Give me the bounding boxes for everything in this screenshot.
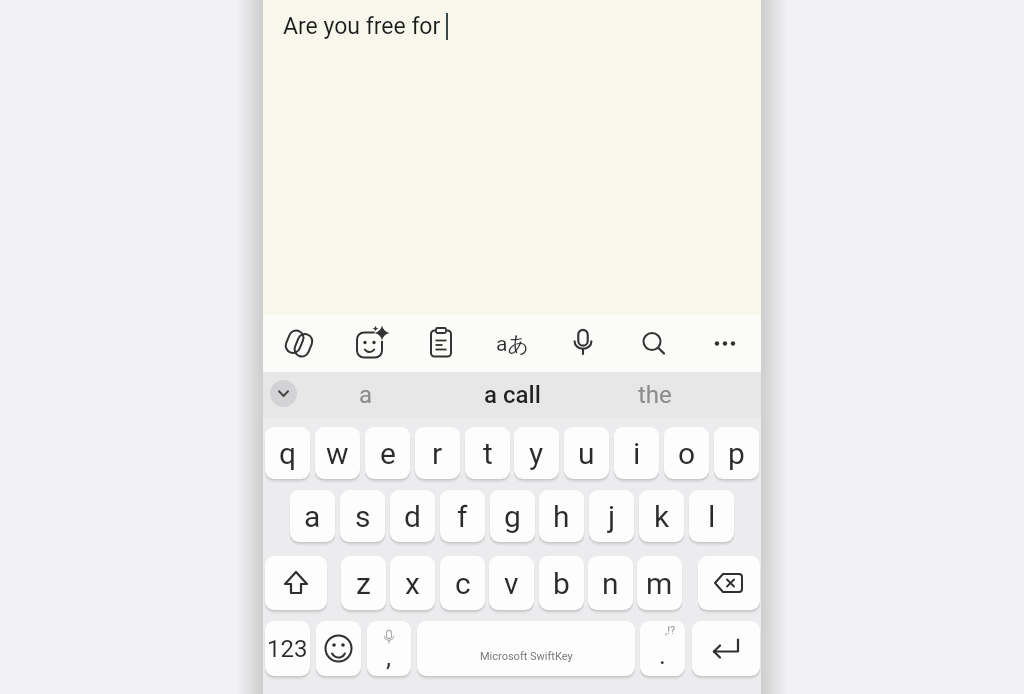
button[interactable]: o	[664, 427, 709, 479]
button[interactable]: s	[340, 490, 385, 542]
button[interactable]: g	[490, 490, 535, 542]
button[interactable]: n	[588, 556, 633, 610]
button[interactable]	[701, 315, 749, 372]
button[interactable]: k	[639, 490, 684, 542]
button[interactable]: a call	[452, 372, 572, 418]
button[interactable]: a	[290, 490, 335, 542]
staticText: ,!?	[665, 624, 676, 637]
staticText: h	[553, 499, 570, 534]
button[interactable]: v	[489, 556, 534, 610]
button[interactable]	[265, 556, 327, 610]
button[interactable]: l	[689, 490, 734, 542]
button[interactable]	[316, 621, 361, 676]
button[interactable]	[698, 556, 760, 610]
button[interactable]	[630, 315, 678, 372]
staticText: aあ	[496, 331, 529, 357]
staticText: l	[708, 499, 716, 534]
staticText: i	[633, 436, 641, 471]
button[interactable]: j	[589, 490, 634, 542]
button[interactable]: aあ	[488, 315, 536, 372]
staticText: z	[356, 566, 371, 601]
button[interactable]	[417, 315, 465, 372]
staticText: n	[602, 566, 619, 601]
staticText: x	[405, 566, 420, 601]
button[interactable]: m	[637, 556, 682, 610]
staticText: Microsoft SwiftKey	[480, 650, 573, 663]
button[interactable]: p	[714, 427, 759, 479]
button[interactable]: 123	[265, 621, 310, 676]
button[interactable]: z	[341, 556, 386, 610]
staticText: u	[578, 436, 595, 471]
staticText: m	[646, 566, 673, 601]
button[interactable]: the	[595, 372, 715, 418]
staticText: ,	[386, 642, 392, 672]
button[interactable]: y	[514, 427, 559, 479]
button[interactable]	[559, 315, 607, 372]
staticText: j	[608, 499, 616, 534]
staticText: the	[638, 381, 672, 409]
button[interactable]: c	[440, 556, 485, 610]
button[interactable]: e	[365, 427, 410, 479]
staticText: .	[659, 640, 666, 670]
staticText: c	[455, 566, 471, 601]
button[interactable]: i	[614, 427, 659, 479]
staticText: v	[504, 566, 519, 601]
staticText: y	[529, 436, 544, 471]
button[interactable]: a	[306, 372, 426, 418]
staticText: f	[457, 499, 468, 534]
staticText: q	[279, 436, 297, 471]
staticText: r	[432, 436, 443, 471]
button[interactable]: q	[265, 427, 310, 479]
staticText: w	[326, 436, 349, 471]
staticText: p	[728, 436, 745, 471]
staticText: a	[359, 381, 373, 409]
staticText: a	[304, 499, 321, 534]
button[interactable]: h	[539, 490, 584, 542]
staticText: b	[553, 566, 570, 601]
staticText: 123	[267, 635, 308, 663]
button[interactable]	[270, 380, 297, 407]
button[interactable]: ,	[367, 621, 411, 676]
button[interactable]: x	[390, 556, 435, 610]
staticText: a call	[484, 381, 541, 409]
button[interactable]	[275, 315, 323, 372]
button[interactable]	[692, 621, 760, 676]
button[interactable]: f	[440, 490, 485, 542]
staticText: g	[504, 499, 521, 534]
staticText: e	[380, 436, 396, 471]
button[interactable]: d	[390, 490, 435, 542]
staticText: Are you free for	[283, 13, 446, 40]
staticText: s	[355, 499, 371, 534]
button[interactable]	[346, 315, 394, 372]
button[interactable]: u	[564, 427, 609, 479]
button[interactable]: b	[539, 556, 584, 610]
button[interactable]: t	[465, 427, 510, 479]
button[interactable]: w	[315, 427, 360, 479]
button[interactable]: ,!?	[640, 621, 685, 676]
button[interactable]: r	[415, 427, 460, 479]
staticText: o	[678, 436, 696, 471]
button[interactable]: Microsoft SwiftKey	[417, 621, 635, 676]
staticText: d	[404, 499, 421, 534]
staticText: k	[654, 499, 670, 534]
staticText: t	[483, 436, 493, 471]
